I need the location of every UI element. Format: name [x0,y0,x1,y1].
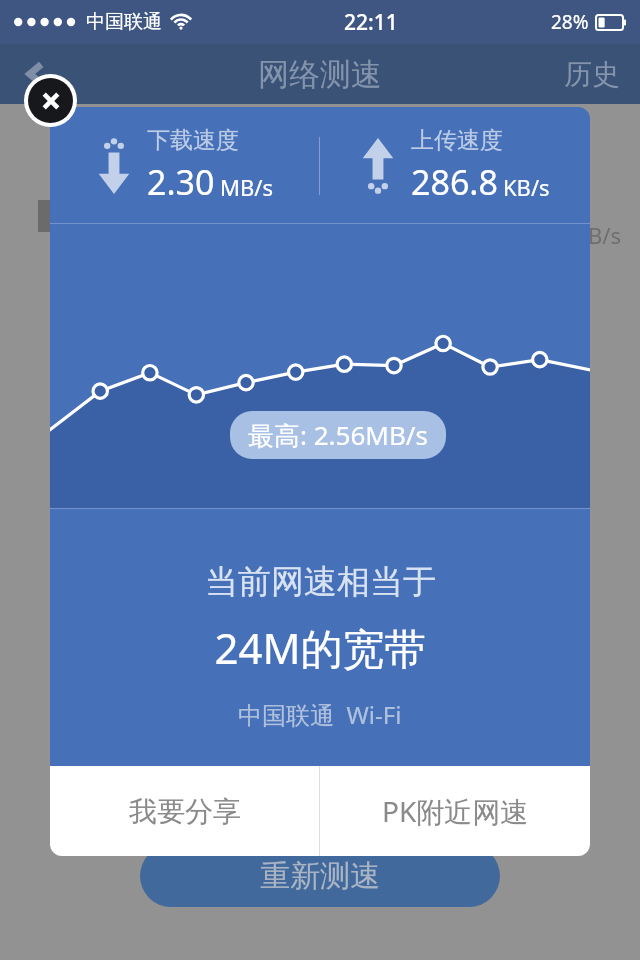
staticText: B/s [588,220,622,250]
staticText: 历史 [564,57,620,92]
staticText: 下载速度 [147,126,239,155]
staticText: 22:11 [344,8,398,37]
staticText: 2.30 [147,159,215,205]
button[interactable]: Back [10,48,62,100]
staticText: KB/s [503,172,550,202]
staticText: 中国联通 [86,10,162,34]
staticText: MB/s [220,172,273,202]
staticText: 中国联通 Wi-Fi [238,698,402,731]
staticText: 286.8 [411,159,498,205]
button[interactable]: 重新测速 [140,845,500,907]
button[interactable]: PK附近网速 [320,766,590,856]
staticText: 网络测速 [258,55,382,94]
staticText: 当前网速相当于 [205,561,436,603]
staticText: 24M的宽带 [214,619,427,676]
staticText: 上传速度 [411,126,503,155]
button[interactable]: 我要分享 [50,766,319,856]
staticText: 最高: 2.56MB/s [248,417,428,453]
staticText: 28% [551,9,589,35]
staticText: 我要分享 [129,794,241,829]
button[interactable]: 历史 [558,49,626,100]
staticText: 重新测速 [260,857,380,895]
button[interactable]: Close [24,74,77,127]
staticText: PK附近网速 [382,792,529,830]
